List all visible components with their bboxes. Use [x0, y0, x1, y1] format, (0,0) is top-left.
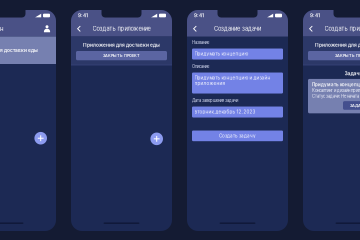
staticText: вторник, декабрь 12, 2023	[194, 109, 255, 115]
staticText: Дата завершения задачи	[192, 98, 238, 103]
button[interactable]: ЗАКРЫТЬ ПРОЕКТ	[308, 51, 360, 60]
staticText: Задачи	[344, 70, 360, 76]
staticText: Описание	[192, 64, 209, 69]
staticText: Приложения для доставки еды	[315, 42, 360, 48]
staticText: Придумать концепцию и дизайн приложения	[194, 75, 270, 86]
staticText: Статус задачи: Не начата	[312, 94, 359, 99]
button[interactable]: Назад	[305, 22, 317, 35]
staticText: Создать приложение	[92, 25, 150, 32]
staticText: Придумать концепцию	[312, 82, 360, 87]
button[interactable]: вторник, декабрь 12, 2023	[192, 106, 283, 117]
staticText: ЗАДАЧА В РАБОТЕ	[350, 103, 360, 108]
staticText: 9:41	[78, 13, 88, 18]
staticText: Создать приложение	[324, 25, 360, 32]
button[interactable]: Новая задача	[150, 132, 163, 145]
staticText: ЗАКРЫТЬ ПРОЕКТ	[103, 53, 140, 58]
staticText: Главный экран	[0, 25, 4, 32]
button[interactable]: Новый проект	[34, 132, 47, 144]
staticText: Приложения для доставки еды	[83, 42, 160, 48]
button[interactable]: Профиль	[41, 22, 53, 35]
staticText: Название	[192, 40, 209, 45]
staticText: Консалтинг и дизайн приложения	[312, 88, 360, 93]
staticText: 9:41	[194, 13, 204, 18]
button[interactable]: ЗАКРЫТЬ ПРОЕКТ	[76, 51, 167, 60]
button[interactable]: Назад	[189, 22, 201, 35]
staticText: Придумать концепцию	[194, 51, 248, 57]
button[interactable]: Создать задачу	[192, 130, 283, 141]
staticText: Создать задачу	[219, 133, 256, 139]
staticText: ЗАКРЫТЬ ПРОЕКТ	[335, 53, 360, 58]
button[interactable]: Придумать концепцию и дизайн приложения	[192, 72, 283, 93]
button[interactable]: Назад	[73, 22, 85, 35]
staticText: Приложения для доставки еды	[0, 47, 38, 53]
staticText: Создание задачи	[214, 25, 261, 32]
button[interactable]: ЗАДАЧА В РАБОТЕ	[343, 101, 360, 110]
button[interactable]: Проект	[0, 36, 56, 64]
staticText: 9:41	[310, 13, 320, 18]
button[interactable]: Придумать концепцию	[192, 48, 283, 59]
